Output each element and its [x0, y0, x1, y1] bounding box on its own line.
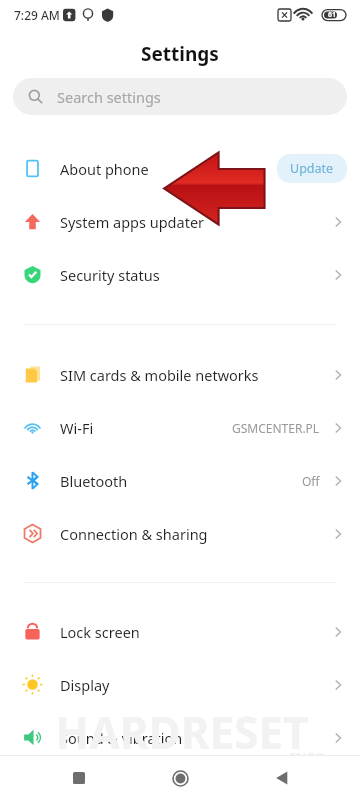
staticText: .INFO [286, 748, 326, 767]
staticText: Settings [141, 41, 219, 67]
button[interactable]: Search settings [13, 78, 347, 115]
button[interactable]: Sound & vibration [0, 711, 360, 764]
staticText: Bluetooth [60, 471, 302, 491]
staticText: Off [302, 473, 320, 489]
button[interactable]: System apps updater [0, 195, 360, 248]
staticText: 61 [328, 10, 337, 20]
button[interactable]: Lock screen [0, 605, 360, 658]
staticText: Search settings [57, 87, 161, 107]
staticText: HARDRESET [2, 702, 360, 762]
staticText: About phone [60, 159, 277, 179]
staticText: 7:29 AM [14, 7, 60, 23]
staticText: Lock screen [60, 622, 330, 642]
staticText: Connection & sharing [60, 524, 330, 544]
button[interactable]: Home [157, 756, 203, 800]
staticText: Sound & vibration [60, 728, 330, 748]
button[interactable]: Bluetooth [0, 454, 360, 507]
staticText: Security status [60, 265, 330, 285]
staticText: Display [60, 675, 330, 695]
staticText: SIM cards & mobile networks [60, 365, 330, 385]
button[interactable]: Display [0, 658, 360, 711]
button[interactable]: Recents [56, 756, 102, 800]
staticText: Update [290, 160, 334, 177]
button[interactable]: Update [277, 154, 347, 183]
button[interactable]: Connection & sharing [0, 507, 360, 560]
button[interactable]: Security status [0, 248, 360, 301]
staticText: GSMCENTER.PL [232, 420, 320, 436]
staticText: System apps updater [60, 212, 330, 232]
button[interactable]: Back [259, 756, 305, 800]
button[interactable]: About phone [0, 142, 360, 195]
button[interactable]: Wi-Fi [0, 401, 360, 454]
button[interactable]: SIM cards & mobile networks [0, 348, 360, 401]
staticText: Wi-Fi [60, 418, 232, 438]
